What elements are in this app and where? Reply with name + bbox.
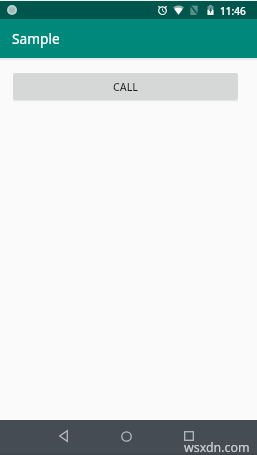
staticText: wsxdn.com: [184, 439, 250, 455]
staticText: Sample: [12, 29, 60, 48]
staticText: 11:46: [220, 4, 246, 18]
button[interactable]: Back: [50, 423, 76, 449]
button[interactable]: Home: [113, 423, 139, 449]
staticText: CALL: [113, 80, 138, 94]
button[interactable]: Recent apps: [176, 423, 202, 449]
button[interactable]: CALL: [13, 73, 238, 100]
